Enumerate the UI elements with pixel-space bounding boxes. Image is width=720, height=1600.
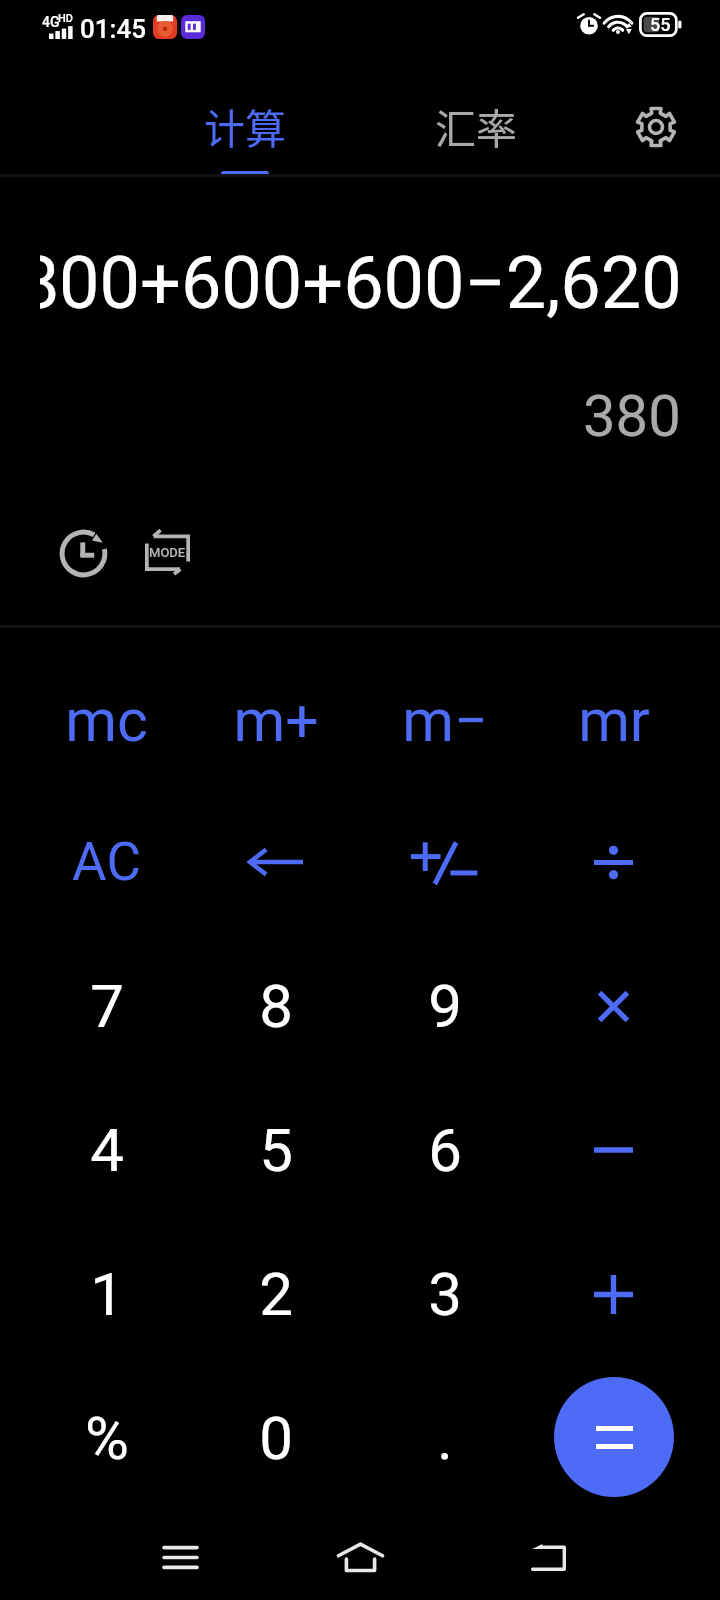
staticText: 4 xyxy=(90,1115,124,1185)
button[interactable]: Home xyxy=(330,1533,390,1581)
button[interactable]: 9 xyxy=(360,934,529,1078)
staticText: 3 xyxy=(428,1259,462,1329)
staticText: mr xyxy=(578,686,650,755)
button[interactable]: Equals xyxy=(554,1377,674,1497)
button[interactable]: Plus xyxy=(529,1222,698,1366)
button[interactable]: 2 xyxy=(191,1222,360,1366)
button[interactable]: 1 xyxy=(22,1222,191,1366)
staticText: 8 xyxy=(259,971,293,1041)
staticText: 1,800+600+600−2,620 xyxy=(40,241,682,325)
staticText: MODE xyxy=(149,545,186,560)
staticText: 7 xyxy=(90,971,124,1041)
staticText: mc xyxy=(65,686,148,755)
button[interactable]: 7 xyxy=(22,934,191,1078)
button[interactable]: Minus xyxy=(529,1078,698,1222)
button[interactable]: 计算 xyxy=(185,95,305,155)
button[interactable]: 6 xyxy=(360,1078,529,1222)
button[interactable]: 3 xyxy=(360,1222,529,1366)
button[interactable]: 8 xyxy=(191,934,360,1078)
staticText: HD xyxy=(58,12,74,25)
button[interactable]: 4 xyxy=(22,1078,191,1222)
button[interactable]: 0 xyxy=(191,1366,360,1510)
staticText: . xyxy=(437,1403,453,1473)
button[interactable]: Plus minus xyxy=(360,790,529,934)
button[interactable]: Multiply xyxy=(529,934,698,1078)
button[interactable]: AC xyxy=(22,790,191,934)
button[interactable]: Settings xyxy=(626,97,686,157)
button[interactable]: Recent apps xyxy=(150,1533,210,1581)
button[interactable]: mr xyxy=(529,648,698,792)
staticText: 380 xyxy=(583,382,681,442)
button[interactable]: mc xyxy=(22,648,191,792)
staticText: 汇率 xyxy=(435,96,517,155)
button[interactable]: Divide xyxy=(529,790,698,934)
button[interactable]: . xyxy=(360,1366,529,1510)
button[interactable]: 汇率 xyxy=(416,95,536,155)
staticText: 9 xyxy=(428,971,462,1041)
button[interactable]: Back xyxy=(519,1533,579,1581)
button[interactable]: m− xyxy=(360,648,529,792)
staticText: 1 xyxy=(90,1259,124,1329)
staticText: m− xyxy=(402,686,488,755)
staticText: m+ xyxy=(233,686,319,755)
staticText: 计算 xyxy=(204,96,286,155)
button[interactable]: m+ xyxy=(191,648,360,792)
button[interactable]: Mode xyxy=(139,525,195,579)
button[interactable]: % xyxy=(22,1366,191,1510)
button[interactable]: History xyxy=(54,524,112,582)
button[interactable]: 5 xyxy=(191,1078,360,1222)
staticText: 0 xyxy=(259,1403,293,1473)
staticText: % xyxy=(85,1403,129,1473)
button[interactable]: Backspace xyxy=(191,790,360,934)
staticText: 4G xyxy=(42,14,60,30)
staticText: 55 xyxy=(650,14,671,35)
staticText: 5 xyxy=(259,1115,293,1185)
staticText: 6 xyxy=(428,1115,462,1185)
staticText: 01:45 xyxy=(80,14,147,44)
staticText: AC xyxy=(72,831,141,893)
staticText: 2 xyxy=(259,1259,293,1329)
